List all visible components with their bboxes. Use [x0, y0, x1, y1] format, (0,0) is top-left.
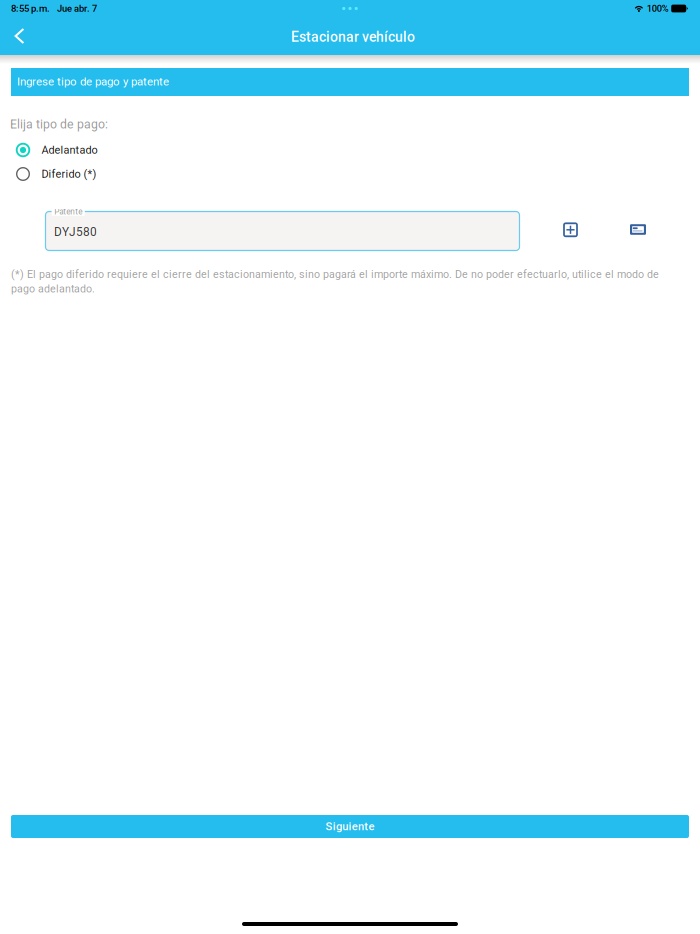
staticText: Elija tipo de pago:: [10, 117, 108, 131]
staticText: Siguiente: [325, 820, 374, 833]
staticText: Jue abr. 7: [57, 3, 97, 14]
staticText: Ingrese tipo de pago y patente: [17, 75, 169, 88]
staticText: 8:55 p.m.: [11, 3, 50, 14]
button[interactable]: Volver: [0, 17, 39, 55]
button[interactable]: Adelantado: [0, 139, 240, 161]
button[interactable]: Siguiente: [11, 815, 689, 838]
button[interactable]: Agregar patente: [553, 213, 587, 247]
staticText: Patente: [54, 207, 82, 217]
staticText: Estacionar vehículo: [291, 29, 415, 45]
staticText: Adelantado: [41, 144, 97, 156]
staticText: 100%: [647, 3, 669, 14]
staticText: (*) El pago diferido requiere el cierre …: [11, 268, 659, 295]
button[interactable]: Diferido (*): [0, 163, 240, 185]
staticText: Diferido (*): [41, 168, 96, 180]
staticText: DYJ580: [54, 225, 97, 239]
button[interactable]: Escanear cédula verde: [621, 212, 655, 246]
